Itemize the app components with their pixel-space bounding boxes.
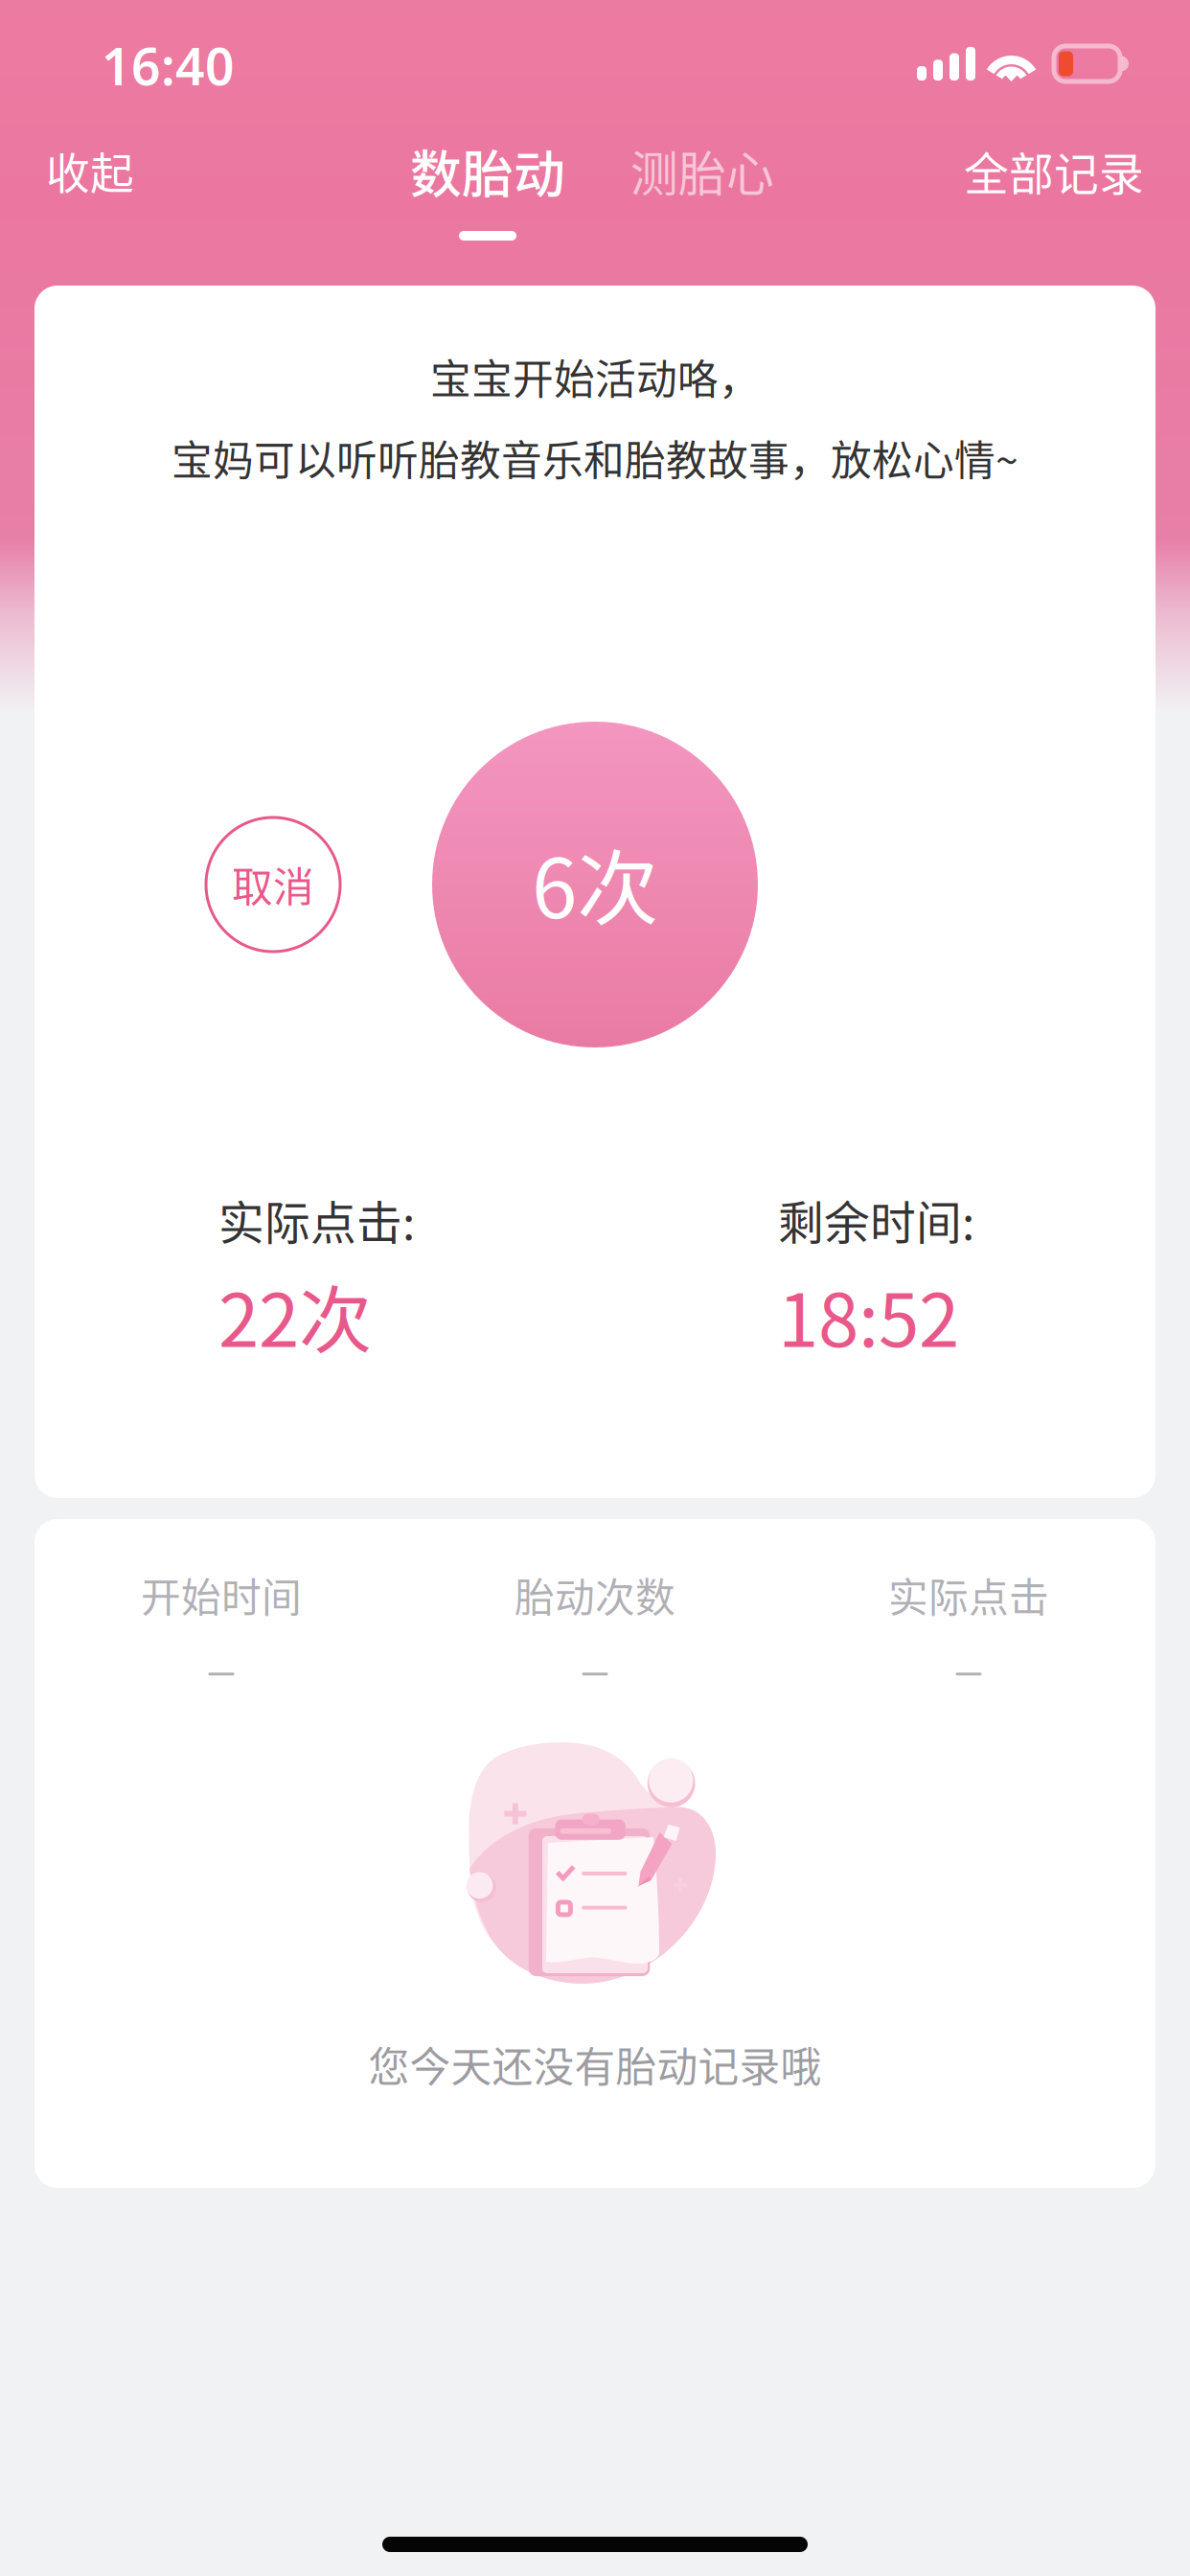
staticText: 实际点击 [888, 1566, 1049, 1624]
staticText: 宝宝开始活动咯， [430, 347, 760, 406]
staticText: 实际点击: [218, 1186, 415, 1253]
button[interactable]: 收起 [33, 141, 148, 200]
button[interactable]: 6次 [432, 722, 758, 1047]
button[interactable]: 取消 [206, 817, 340, 952]
button[interactable]: 数胎动 [397, 141, 579, 241]
staticText: 全部记录 [964, 138, 1144, 203]
staticText: 剩余时间: [778, 1186, 974, 1253]
staticText: 宝妈可以听听胎教音乐和胎教故事，放松心情~ [172, 428, 1018, 487]
staticText: 18:52 [778, 1262, 959, 1368]
staticText: 16:40 [102, 31, 235, 100]
staticText: 胎动次数 [515, 1566, 675, 1624]
staticText: 开始时间 [141, 1566, 302, 1624]
staticText: 收起 [46, 139, 134, 202]
button[interactable]: 测胎心 [617, 141, 788, 241]
staticText: 数胎动 [410, 133, 565, 208]
staticText: 22次 [218, 1262, 372, 1368]
button[interactable]: 全部记录 [950, 141, 1157, 200]
staticText: 测胎心 [630, 136, 774, 205]
staticText: 6次 [532, 823, 658, 942]
staticText: 取消 [232, 855, 314, 914]
staticText: 您今天还没有胎动记录哦 [368, 2035, 822, 2094]
